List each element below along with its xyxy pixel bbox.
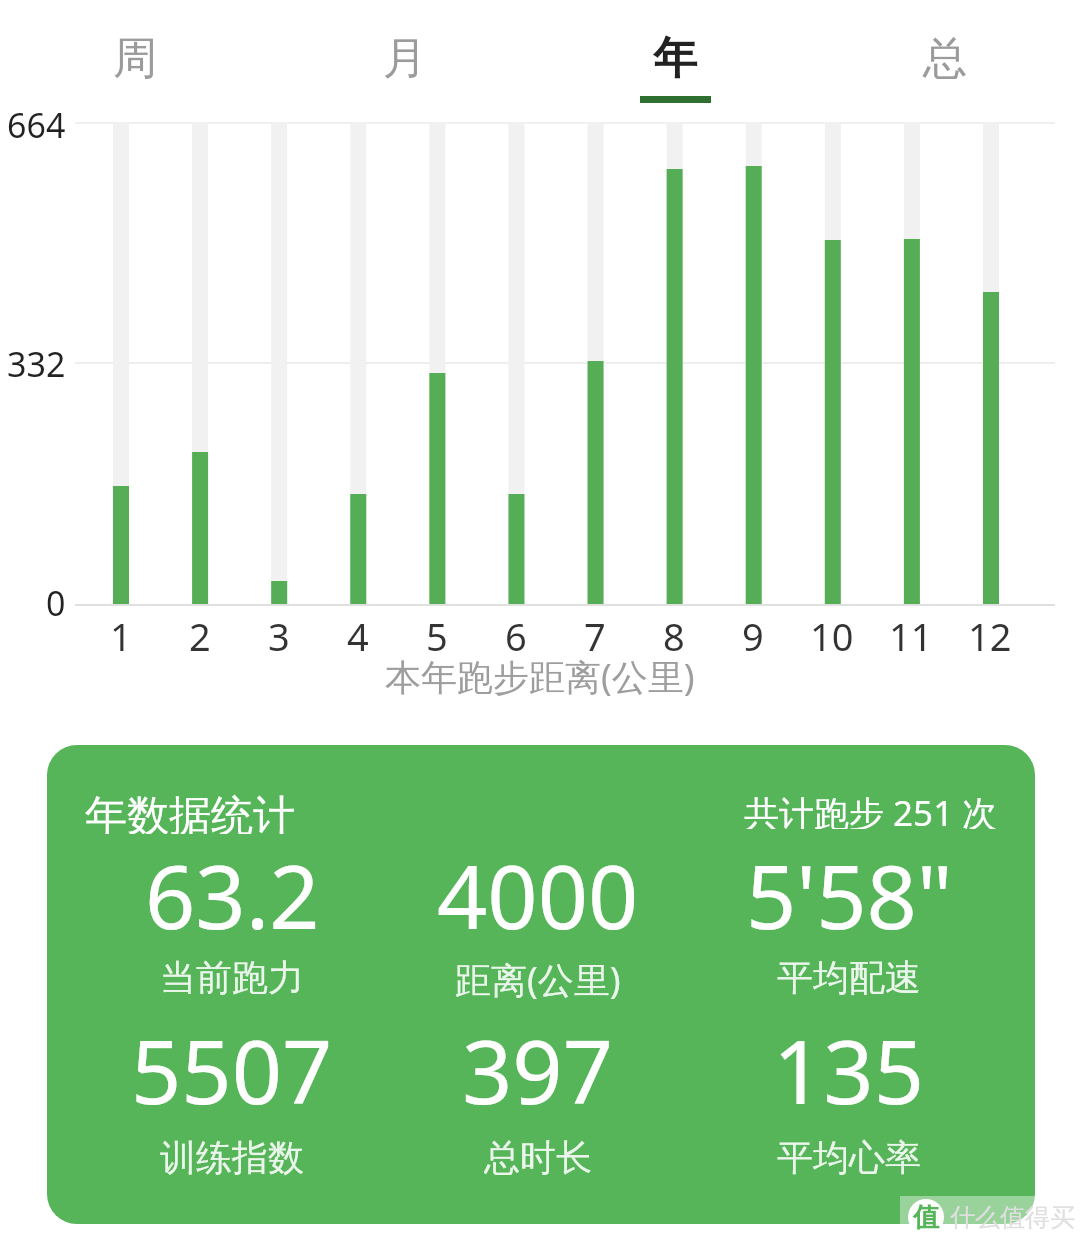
staticText: 本年跑步距离(公里) bbox=[385, 652, 695, 696]
staticText: 5 bbox=[426, 610, 448, 652]
staticText: 4000 bbox=[437, 835, 639, 939]
staticText: 平均配速 bbox=[777, 955, 921, 999]
staticText: 11 bbox=[889, 610, 933, 652]
staticText: 6 bbox=[505, 610, 527, 652]
staticText: 664 bbox=[7, 102, 66, 144]
staticText: 1 bbox=[110, 610, 132, 652]
button[interactable]: 月 bbox=[270, 10, 540, 106]
staticText: 12 bbox=[968, 610, 1012, 652]
staticText: 332 bbox=[7, 341, 66, 383]
staticText: 10 bbox=[810, 610, 854, 652]
staticText: 总时长 bbox=[484, 1135, 592, 1179]
staticText: 值 bbox=[913, 1201, 939, 1234]
button[interactable]: 总 bbox=[810, 10, 1080, 106]
staticText: 2 bbox=[189, 610, 211, 652]
staticText: 总 bbox=[923, 31, 967, 86]
button[interactable]: 年 bbox=[540, 10, 810, 106]
staticText: 年 bbox=[653, 31, 697, 86]
staticText: 周 bbox=[113, 31, 157, 86]
staticText: 共计跑步 251 次 bbox=[744, 789, 998, 829]
staticText: 8 bbox=[663, 610, 685, 652]
staticText: 7 bbox=[584, 610, 606, 652]
staticText: 397 bbox=[462, 1010, 614, 1114]
staticText: 5507 bbox=[131, 1010, 333, 1114]
staticText: 训练指数 bbox=[160, 1135, 304, 1179]
staticText: 4 bbox=[347, 610, 369, 652]
staticText: 什么值得买 bbox=[950, 1202, 1075, 1233]
staticText: 3 bbox=[268, 610, 290, 652]
staticText: 月 bbox=[383, 31, 427, 86]
staticText: 5'58" bbox=[746, 835, 953, 939]
staticText: 135 bbox=[773, 1010, 925, 1114]
staticText: 年数据统计 bbox=[85, 790, 295, 834]
button[interactable]: 年数据统计 bbox=[47, 745, 1035, 1224]
staticText: 平均心率 bbox=[777, 1135, 921, 1179]
staticText: 当前跑力 bbox=[160, 955, 304, 999]
staticText: 9 bbox=[742, 610, 764, 652]
staticText: 63.2 bbox=[145, 835, 320, 939]
staticText: 距离(公里) bbox=[455, 955, 621, 999]
button[interactable]: 周 bbox=[0, 10, 270, 106]
staticText: 0 bbox=[46, 580, 66, 622]
